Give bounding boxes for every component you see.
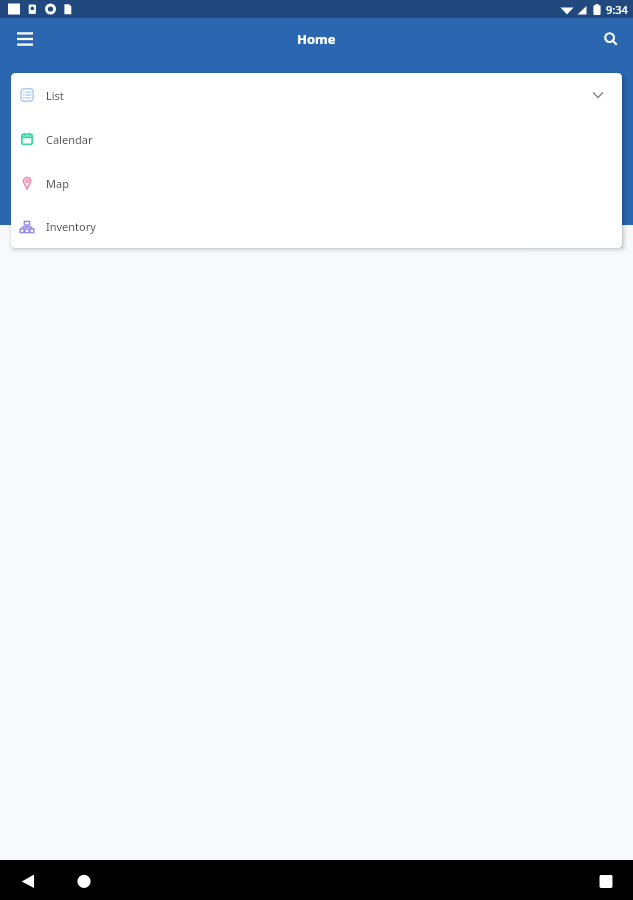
button[interactable]: Back <box>20 871 38 889</box>
button[interactable]: Inventory <box>11 205 622 248</box>
button[interactable]: Menu <box>11 25 39 53</box>
staticText: List <box>46 88 64 103</box>
button[interactable]: Search <box>597 25 625 53</box>
button[interactable]: Recents <box>597 871 615 889</box>
button[interactable]: List <box>11 73 622 117</box>
staticText: Map <box>46 176 69 191</box>
button[interactable]: Calendar <box>11 117 622 161</box>
staticText: Inventory <box>46 219 96 234</box>
staticText: Home <box>297 30 336 48</box>
staticText: 9:34 <box>606 2 628 17</box>
button[interactable]: Home <box>75 871 93 889</box>
staticText: Calendar <box>46 132 93 147</box>
button[interactable]: Map <box>11 161 622 205</box>
